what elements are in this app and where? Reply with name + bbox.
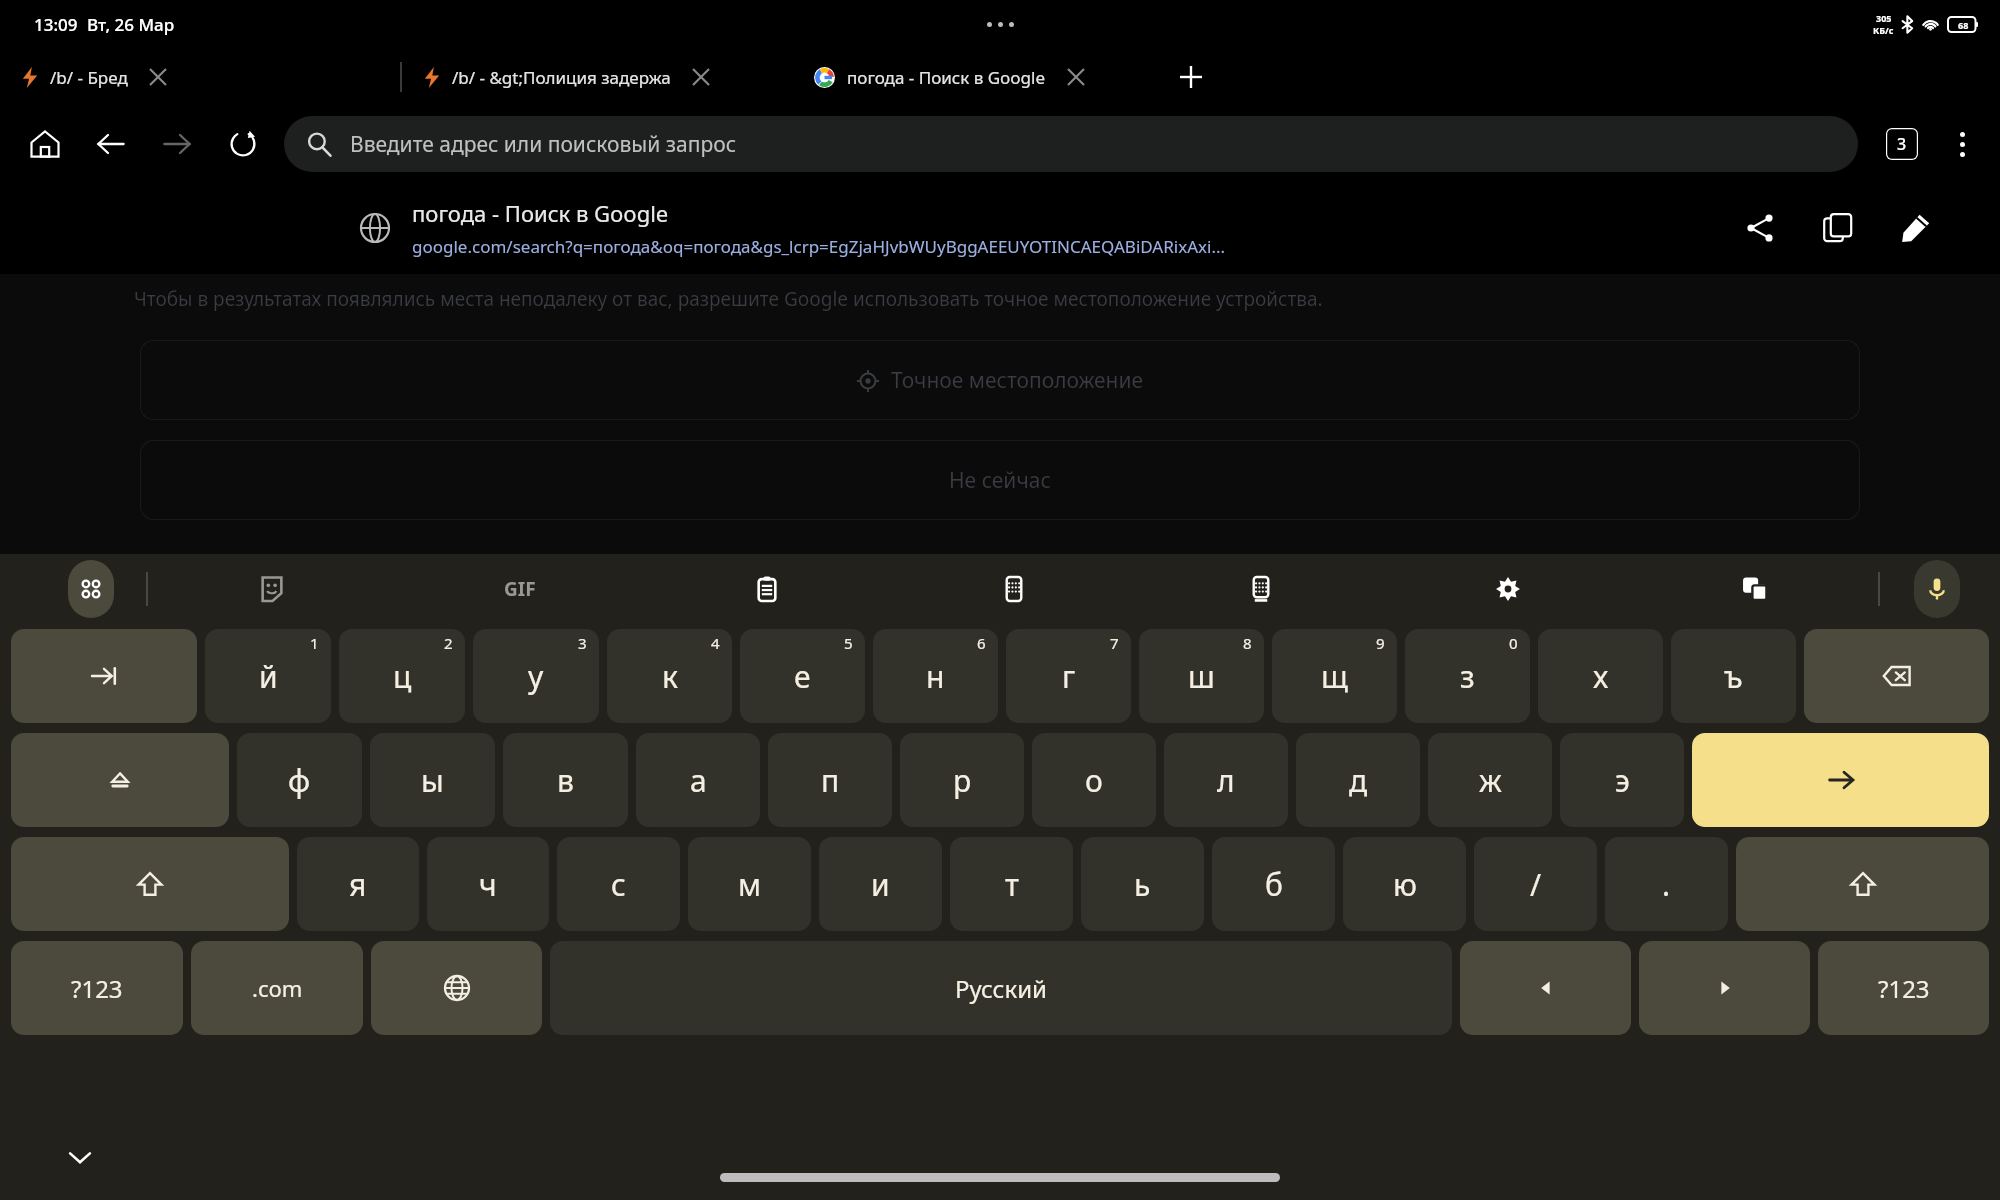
button[interactable]: Toolbar	[68, 560, 114, 618]
staticText: GIF	[504, 576, 536, 602]
button[interactable]: ф	[237, 733, 362, 827]
button[interactable]: г	[1006, 629, 1131, 723]
button[interactable]: б	[1212, 837, 1335, 931]
staticText: щ	[1321, 656, 1348, 697]
button[interactable]: д	[1296, 733, 1420, 827]
button[interactable]: New tab	[1162, 48, 1220, 106]
button[interactable]: с	[557, 837, 680, 931]
button[interactable]: и	[819, 837, 942, 931]
button[interactable]: Caps lock	[11, 733, 229, 827]
button[interactable]: т	[950, 837, 1073, 931]
button[interactable]: Shift	[1736, 837, 1989, 931]
button[interactable]: GIF	[396, 554, 643, 624]
button[interactable]: ь	[1081, 837, 1204, 931]
staticText: 3	[1897, 133, 1907, 155]
staticText: .	[1662, 864, 1671, 905]
button[interactable]: ъ	[1671, 629, 1796, 723]
button[interactable]: Edit	[1886, 198, 1946, 258]
button[interactable]: Enter	[1692, 733, 1989, 827]
staticText: ъ	[1724, 656, 1743, 697]
staticText: у	[528, 656, 544, 697]
button[interactable]: а	[636, 733, 760, 827]
button[interactable]: я	[297, 837, 419, 931]
button[interactable]: в	[503, 733, 628, 827]
button[interactable]: Cursor right	[1639, 941, 1810, 1035]
button[interactable]: ю	[1343, 837, 1466, 931]
button[interactable]: .com	[191, 941, 363, 1035]
button[interactable]: ы	[370, 733, 495, 827]
button[interactable]: х	[1538, 629, 1663, 723]
button[interactable]: п	[768, 733, 892, 827]
button[interactable]: щ	[1272, 629, 1397, 723]
button[interactable]: Не сейчас	[140, 440, 1860, 520]
button[interactable]: э	[1560, 733, 1684, 827]
button[interactable]: к	[607, 629, 732, 723]
button[interactable]: л	[1164, 733, 1288, 827]
staticText: Не сейчас	[949, 466, 1051, 495]
staticText: 5	[844, 633, 853, 653]
staticText: 305	[1876, 12, 1892, 24]
staticText: о	[1085, 760, 1103, 801]
button[interactable]: ч	[427, 837, 549, 931]
button[interactable]: Точное местоположение	[140, 340, 1860, 420]
button[interactable]: Введите адрес или поисковый запрос	[284, 116, 1858, 172]
button[interactable]: Close tab	[138, 57, 178, 97]
staticText: ф	[288, 760, 311, 801]
button[interactable]: Home	[12, 111, 78, 177]
staticText: с	[611, 864, 626, 905]
button[interactable]: ш	[1139, 629, 1264, 723]
staticText: л	[1217, 760, 1235, 801]
button[interactable]: р	[900, 733, 1024, 827]
button[interactable]: Back	[78, 111, 144, 177]
button[interactable]: /	[1474, 837, 1597, 931]
staticText: ?123	[1878, 972, 1930, 1005]
button[interactable]: Share	[1730, 198, 1790, 258]
button[interactable]: Tabs	[1876, 118, 1928, 170]
button[interactable]: /b/ - &gt;Полиция задержа	[402, 48, 792, 106]
button[interactable]: о	[1032, 733, 1156, 827]
staticText: 1	[310, 633, 319, 653]
button[interactable]: Translate	[1631, 554, 1878, 624]
staticText: г	[1062, 656, 1076, 697]
staticText: /b/ - Бред	[50, 66, 128, 89]
button[interactable]: Stickers	[148, 554, 396, 624]
button[interactable]: /b/ - Бред	[0, 48, 400, 106]
button[interactable]: Clipboard	[643, 554, 890, 624]
staticText: и	[871, 864, 890, 905]
button[interactable]: й	[205, 629, 331, 723]
button[interactable]: погода - Поиск в Google	[792, 48, 1162, 106]
button[interactable]: Settings	[1384, 554, 1631, 624]
button[interactable]: Close tab	[681, 57, 721, 97]
staticText: 2	[444, 633, 453, 653]
staticText: Точное местоположение	[891, 366, 1144, 395]
button[interactable]: Language	[371, 941, 542, 1035]
button[interactable]: Backspace	[1804, 629, 1989, 723]
button[interactable]: Emoji keyboard	[890, 554, 1137, 624]
button[interactable]: One-handed	[1137, 554, 1384, 624]
button[interactable]: Voice input	[1914, 560, 1960, 618]
button[interactable]: у	[473, 629, 599, 723]
button[interactable]: з	[1405, 629, 1530, 723]
button[interactable]: ж	[1428, 733, 1552, 827]
staticText: м	[738, 864, 762, 905]
button[interactable]: Hide keyboard	[52, 1129, 108, 1185]
button[interactable]: е	[740, 629, 865, 723]
staticText: ш	[1188, 656, 1215, 697]
button[interactable]: м	[688, 837, 811, 931]
staticText: ?123	[71, 972, 123, 1005]
button[interactable]: More options	[1934, 116, 1990, 172]
button[interactable]: ?123	[1818, 941, 1989, 1035]
button[interactable]: Shift	[11, 837, 289, 931]
button[interactable]: ?123	[11, 941, 183, 1035]
button[interactable]: Cursor left	[1460, 941, 1631, 1035]
button[interactable]: Tab	[11, 629, 197, 723]
button[interactable]: Forward	[144, 111, 210, 177]
button[interactable]: ц	[339, 629, 465, 723]
button[interactable]: Русский	[550, 941, 1452, 1035]
button[interactable]: Copy	[1808, 198, 1868, 258]
button[interactable]: погода - Поиск в Google	[0, 182, 2000, 274]
button[interactable]: Reload	[210, 111, 276, 177]
button[interactable]: Close tab	[1056, 57, 1096, 97]
button[interactable]: н	[873, 629, 998, 723]
button[interactable]: .	[1605, 837, 1728, 931]
